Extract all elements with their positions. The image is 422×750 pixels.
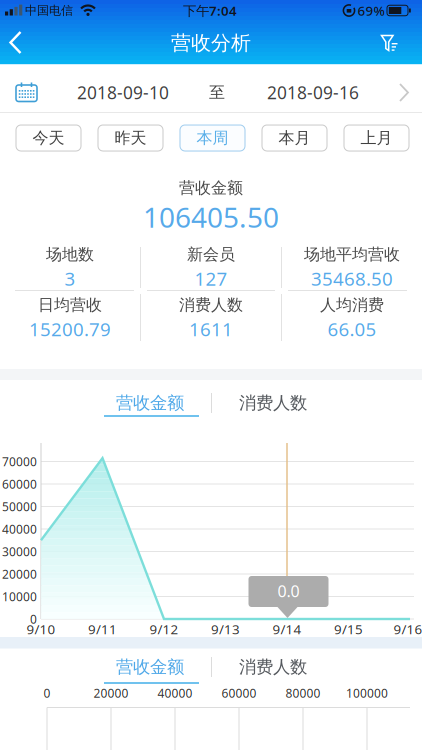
staticText: 20000 [93,685,128,701]
button[interactable]: 昨天 [98,125,163,151]
staticText: 2018-09-16 [267,81,359,104]
staticText: 80000 [285,685,320,701]
staticText: 30000 [2,543,37,559]
staticText: 40000 [157,685,192,701]
staticText: 场地数 [46,245,94,264]
staticText: 9/13 [211,620,240,638]
staticText: 40000 [2,521,37,537]
staticText: 69% [357,2,384,19]
staticText: 0 [30,611,37,627]
staticText: 消费人数 [239,392,307,414]
staticText: 100000 [346,685,388,701]
staticText: 2018-09-10 [77,81,169,104]
staticText: 中国电信 [25,3,73,18]
staticText: 60000 [221,685,256,701]
button[interactable]: 消费人数 [218,654,328,680]
staticText: 新会员 [187,245,235,264]
button[interactable]: 消费人数 [218,390,328,416]
staticText: 本周 [196,128,228,148]
staticText: 1611 [189,317,233,341]
staticText: 9/16 [393,620,422,638]
button[interactable]: Filter [381,35,398,51]
staticText: 3 [64,266,75,291]
staticText: 上月 [360,128,392,148]
staticText: 消费人数 [179,295,243,315]
staticText: 至 [209,83,225,102]
staticText: 营收分析 [171,31,251,55]
staticText: 20000 [2,566,37,582]
button[interactable]: 营收金额 [95,390,205,416]
button[interactable]: 本周 [180,125,245,151]
button[interactable]: 本月 [262,125,327,151]
staticText: 66.05 [327,317,376,341]
staticText: 15200.79 [29,317,111,341]
staticText: 昨天 [114,128,146,148]
staticText: 日均营收 [38,295,102,315]
staticText: 0 [43,685,50,701]
staticText: 本月 [278,128,310,148]
staticText: 下午7:04 [183,2,237,19]
staticText: 9/10 [26,620,55,638]
staticText: 今天 [32,128,64,148]
staticText: 营收金额 [116,392,184,414]
staticText: 10000 [2,588,37,604]
staticText: 60000 [2,476,37,492]
staticText: 106405.50 [143,198,279,236]
staticText: 人均消费 [320,295,384,315]
staticText: 9/14 [272,620,301,638]
staticText: 营收金额 [179,178,243,198]
button[interactable]: 2018-09-10 [0,64,422,113]
button[interactable]: 上月 [344,125,409,151]
button[interactable]: 今天 [16,125,81,151]
staticText: 营收金额 [116,656,184,678]
staticText: 70000 [2,453,37,469]
staticText: 9/12 [149,620,178,638]
button[interactable]: 营收金额 [95,654,205,680]
staticText: 35468.50 [311,266,393,291]
staticText: 9/15 [334,620,363,638]
staticText: 9/11 [88,620,117,638]
staticText: 场地平均营收 [304,245,400,264]
staticText: 消费人数 [239,656,307,678]
staticText: 127 [194,266,227,291]
button[interactable]: Back [0,21,36,64]
staticText: 0.0 [277,580,299,602]
staticText: 50000 [2,498,37,514]
